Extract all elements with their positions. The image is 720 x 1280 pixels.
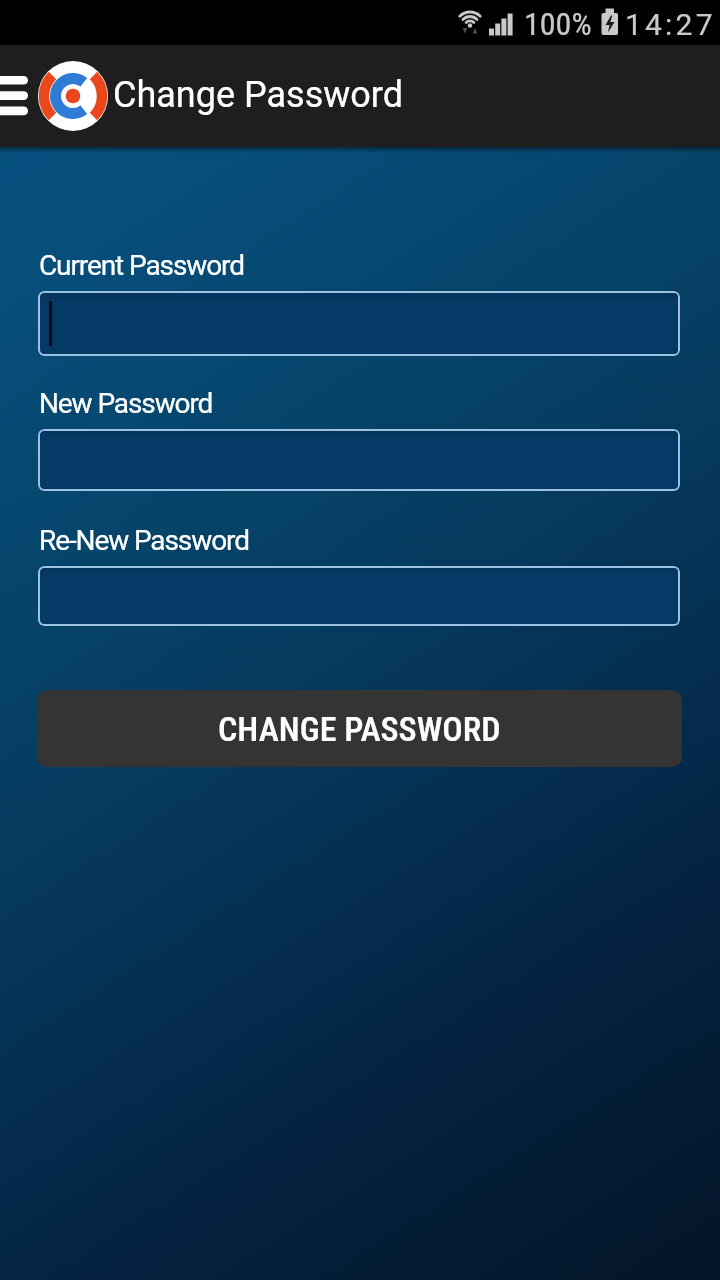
staticText: Re-New Password xyxy=(39,524,249,557)
staticText: Change Password xyxy=(113,74,403,116)
button[interactable]: CHANGE PASSWORD xyxy=(37,690,682,767)
staticText: CHANGE PASSWORD xyxy=(218,709,501,749)
staticText: 14:27 xyxy=(625,7,716,42)
button[interactable] xyxy=(38,429,680,491)
button[interactable] xyxy=(38,566,680,626)
button[interactable] xyxy=(38,291,680,356)
button[interactable] xyxy=(0,66,32,126)
staticText: 100% xyxy=(524,5,592,43)
staticText: Current Password xyxy=(39,249,244,282)
staticText: New Password xyxy=(39,387,213,420)
